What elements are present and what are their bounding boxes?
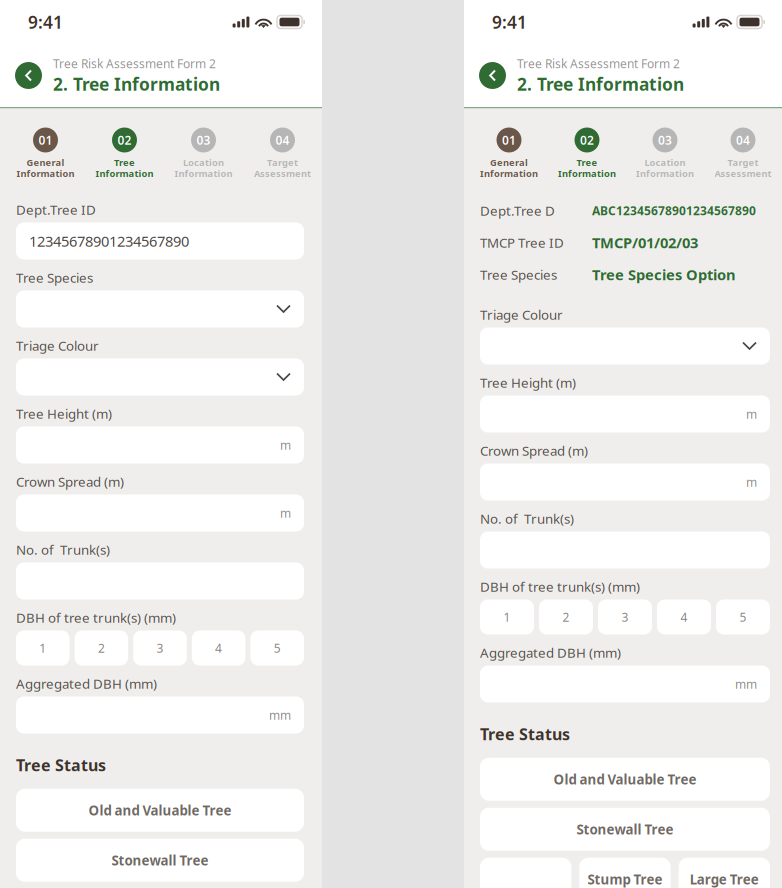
button[interactable]: 2 (75, 630, 128, 665)
staticText: Tree Height (m) (480, 374, 576, 391)
staticText: TMCP/01/02/03 (592, 233, 698, 252)
staticText: Crown Spread (m) (16, 473, 124, 490)
button[interactable]: 04 (704, 127, 782, 178)
button[interactable]: 5 (250, 630, 304, 665)
button[interactable]: 4 (192, 630, 245, 665)
staticText: m (280, 437, 291, 453)
staticText: 1 (39, 640, 46, 656)
staticText: 01 (502, 132, 516, 148)
staticText: Stonewall Tree (576, 820, 673, 838)
staticText: No. of Trunk(s) (480, 510, 574, 527)
staticText: General (490, 156, 528, 169)
staticText: Aggregated DBH (mm) (16, 675, 157, 692)
staticText: Location (644, 156, 685, 169)
button[interactable]: 04 (243, 127, 322, 178)
staticText: Triage Colour (480, 306, 563, 323)
staticText: Assessment (714, 167, 771, 180)
staticText: Information (174, 167, 232, 180)
button[interactable]: 2 (539, 599, 593, 634)
staticText: Large Tree (690, 870, 759, 888)
staticText: Tree Height (m) (16, 405, 112, 422)
button[interactable]: 3 (598, 599, 652, 634)
staticText: Information (16, 167, 74, 180)
button[interactable]: 1 (480, 599, 534, 634)
staticText: 2 (98, 640, 105, 656)
staticText: Tree (576, 156, 597, 169)
button[interactable]: 02 (85, 127, 164, 178)
button[interactable]: 5 (716, 599, 770, 634)
staticText: 9:41 (492, 10, 527, 33)
staticText: Stonewall Tree (111, 851, 208, 869)
staticText: Information (636, 167, 694, 180)
staticText: 03 (196, 132, 210, 148)
staticText: Information (95, 167, 153, 180)
staticText: Tree Species (16, 269, 93, 286)
staticText: 2. Tree Information (53, 72, 220, 95)
staticText: mm (735, 676, 757, 692)
staticText: Location (183, 156, 224, 169)
staticText: 5 (739, 609, 746, 625)
button[interactable]: Back (479, 62, 506, 89)
button[interactable]: Stonewall Tree (16, 839, 304, 882)
staticText: 04 (275, 132, 289, 148)
staticText: 1 (503, 609, 510, 625)
button[interactable]: Stonewall Tree (480, 808, 770, 851)
staticText: DBH of tree trunk(s) (mm) (480, 578, 640, 595)
button[interactable]: Old and Valuable Tree (480, 758, 770, 801)
staticText: 04 (736, 132, 750, 148)
staticText: 2. Tree Information (517, 72, 684, 95)
button[interactable]: 03 (626, 127, 704, 178)
staticText: Crown Spread (m) (480, 442, 588, 459)
staticText: Tree (114, 156, 135, 169)
staticText: 02 (580, 132, 594, 148)
staticText: Aggregated DBH (mm) (480, 644, 621, 661)
staticText: General (26, 156, 64, 169)
button[interactable]: 1 (16, 630, 70, 665)
staticText: Tree Species Option (592, 265, 736, 284)
staticText: Tree Species (480, 266, 557, 283)
staticText: Old and Valuable Tree (553, 770, 696, 788)
button[interactable]: 01 (6, 127, 85, 178)
staticText: m (746, 406, 757, 422)
staticText: 4 (680, 609, 687, 625)
button[interactable]: Back (15, 62, 42, 89)
staticText: Tree Risk Assessment Form 2 (53, 55, 216, 71)
staticText: Tree Status (480, 723, 570, 745)
staticText: Dept.Tree D (480, 202, 555, 219)
button[interactable]: 4 (657, 599, 711, 634)
staticText: 12345678901234567890 (29, 231, 189, 251)
staticText: m (280, 505, 291, 521)
staticText: 01 (38, 132, 52, 148)
staticText: 02 (117, 132, 131, 148)
button[interactable]: Old and Valuable Tree (16, 789, 304, 832)
staticText: Target (267, 156, 298, 169)
staticText: 2 (562, 609, 569, 625)
staticText: mm (269, 707, 291, 723)
staticText: TMCP Tree ID (480, 234, 564, 251)
staticText: 9:41 (28, 10, 63, 33)
button[interactable]: 3 (133, 630, 187, 665)
staticText: Information (558, 167, 616, 180)
staticText: Assessment (254, 167, 311, 180)
button[interactable]: 01 (470, 127, 548, 178)
staticText: 5 (274, 640, 281, 656)
button[interactable]: 02 (548, 127, 626, 178)
staticText: Triage Colour (16, 337, 99, 354)
button[interactable]: 03 (164, 127, 243, 178)
staticText: Target (727, 156, 758, 169)
staticText: Tree Risk Assessment Form 2 (517, 55, 680, 71)
staticText: Dept.Tree ID (16, 201, 96, 218)
staticText: Tree Status (16, 754, 106, 776)
staticText: DBH of tree trunk(s) (mm) (16, 609, 176, 626)
staticText: 3 (621, 609, 628, 625)
staticText: 4 (215, 640, 222, 656)
staticText: 03 (658, 132, 672, 148)
staticText: m (746, 474, 757, 490)
staticText: Old and Valuable Tree (88, 801, 231, 819)
button[interactable]: Large Tree (679, 858, 770, 888)
staticText: Information (480, 167, 538, 180)
staticText: No. of Trunk(s) (16, 541, 110, 558)
button[interactable]: Stump Tree (579, 858, 671, 888)
staticText: ABC12345678901234567890 (592, 202, 756, 218)
